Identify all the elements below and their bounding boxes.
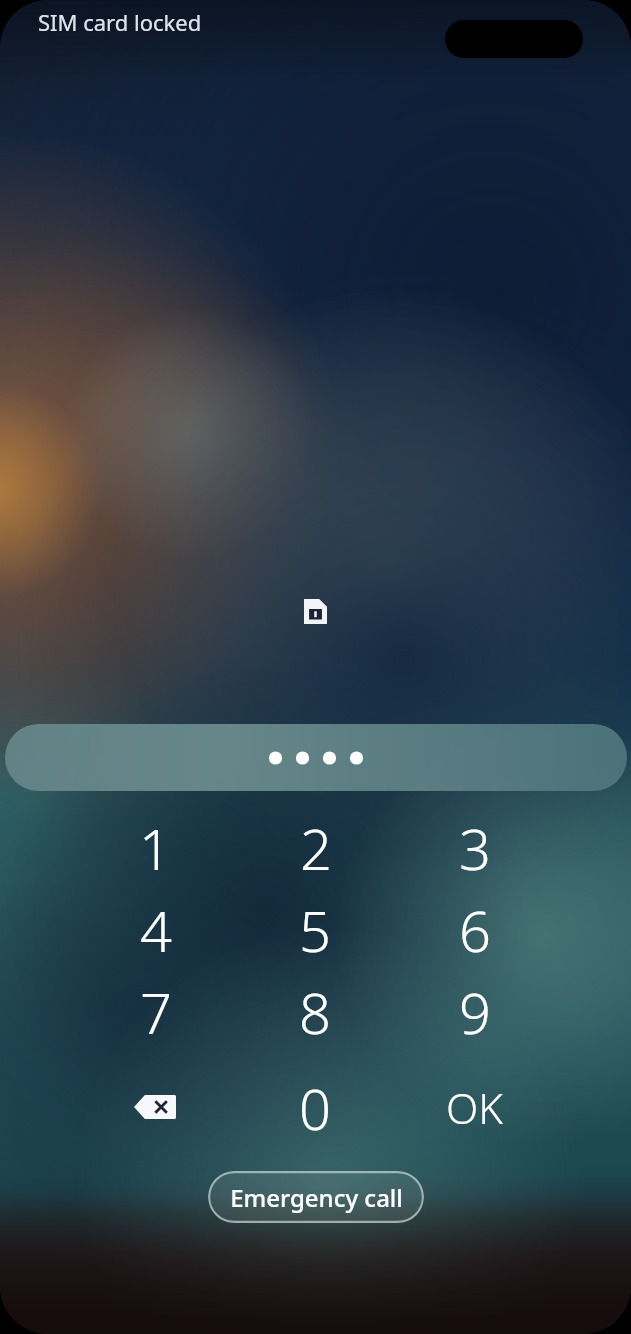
staticText: 9 bbox=[459, 974, 491, 1050]
staticText: 0 bbox=[299, 1070, 331, 1144]
staticText: 5 bbox=[299, 892, 331, 968]
staticText: Emergency call bbox=[230, 1181, 403, 1214]
button[interactable]: 2 bbox=[237, 810, 393, 892]
button[interactable]: 8 bbox=[237, 974, 393, 1056]
button[interactable]: 3 bbox=[396, 810, 552, 892]
button[interactable]: Emergency call bbox=[208, 1171, 424, 1223]
button[interactable]: 0 bbox=[237, 1070, 393, 1144]
staticText: 2 bbox=[300, 810, 332, 886]
staticText: 7 bbox=[140, 974, 172, 1050]
staticText: MNO bbox=[451, 962, 498, 968]
button[interactable]: 7 bbox=[77, 974, 233, 1056]
staticText: 4 bbox=[140, 892, 172, 968]
button[interactable]: 1 bbox=[77, 810, 233, 892]
staticText: 1 bbox=[139, 810, 171, 886]
button[interactable]: Backspace bbox=[95, 1074, 215, 1140]
button[interactable]: 5 bbox=[237, 892, 393, 974]
staticText: 3 bbox=[459, 810, 491, 886]
button[interactable] bbox=[5, 724, 627, 791]
button[interactable]: 9 bbox=[396, 974, 552, 1056]
staticText: 8 bbox=[299, 974, 331, 1050]
staticText: SIM card locked bbox=[38, 7, 202, 37]
button[interactable]: OK bbox=[396, 1070, 552, 1144]
button[interactable]: 6 bbox=[396, 892, 552, 974]
other: SIM card bbox=[304, 599, 327, 624]
staticText: OK bbox=[446, 1079, 503, 1136]
staticText: 6 bbox=[459, 892, 491, 968]
button[interactable]: 4 bbox=[77, 892, 233, 974]
